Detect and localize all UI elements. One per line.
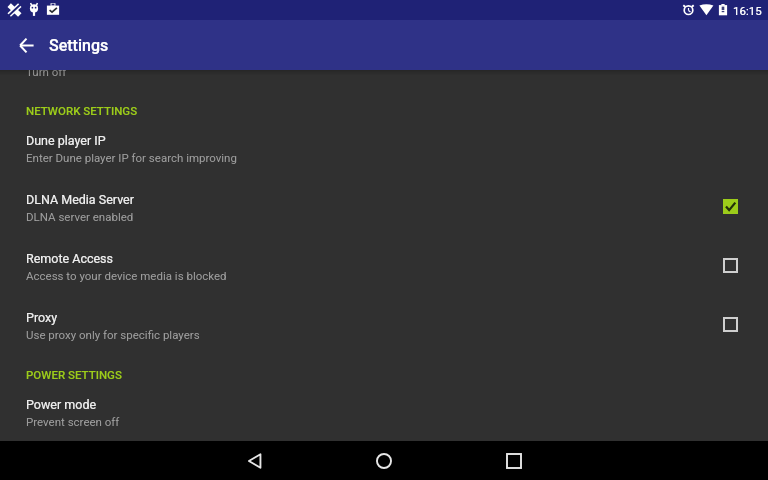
staticText: Access to your device media is blocked: [26, 270, 227, 283]
button[interactable]: DLNA Media Server: [0, 182, 768, 234]
staticText: NETWORK SETTINGS: [26, 105, 138, 118]
staticText: DLNA Media Server: [26, 193, 134, 207]
staticText: Dune player IP: [26, 134, 106, 148]
staticText: Power mode: [26, 398, 97, 412]
button[interactable]: Proxy: [0, 300, 768, 352]
staticText: 16:15: [733, 4, 762, 17]
staticText: Enter Dune player IP for search improvin…: [26, 152, 237, 165]
button[interactable]: Enabled: [720, 196, 740, 216]
staticText: Remote Access: [26, 252, 114, 266]
button[interactable]: Back: [231, 441, 279, 480]
staticText: Use proxy only for specific players: [26, 329, 200, 342]
button[interactable]: Dune player IP: [0, 123, 768, 175]
button[interactable]: Disabled: [720, 314, 740, 334]
button[interactable]: Navigate up: [5, 24, 47, 66]
button[interactable]: Home: [360, 441, 408, 480]
staticText: DLNA server enabled: [26, 211, 134, 224]
staticText: Settings: [49, 36, 109, 55]
button[interactable]: Power mode: [0, 387, 768, 439]
staticText: Proxy: [26, 311, 58, 325]
staticText: Prevent screen off: [26, 416, 120, 429]
button[interactable]: Recent apps: [490, 441, 538, 480]
button[interactable]: Remote Access: [0, 241, 768, 293]
staticText: Turn off: [26, 66, 67, 79]
staticText: POWER SETTINGS: [26, 369, 122, 382]
button[interactable]: Disabled: [720, 255, 740, 275]
